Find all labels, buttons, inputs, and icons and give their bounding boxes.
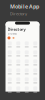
staticText: Directory [10,11,27,16]
staticText: Browse [7,32,17,35]
staticText: Mobile App [10,3,39,10]
staticText: Directory [7,27,25,32]
